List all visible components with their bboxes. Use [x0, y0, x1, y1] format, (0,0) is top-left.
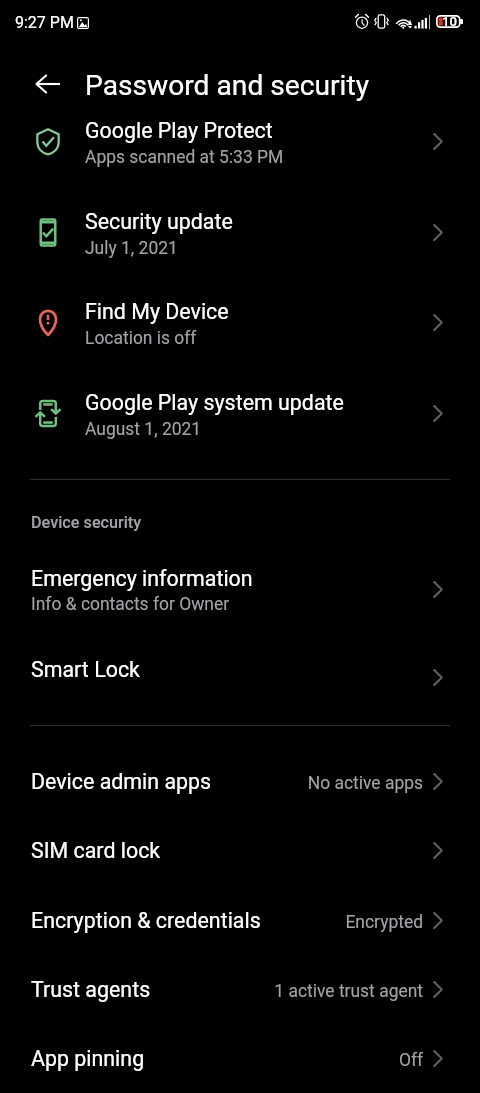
button[interactable]: SIM card lock: [0, 823, 480, 892]
button[interactable]: Back: [24, 60, 72, 108]
staticText: July 1, 2021: [85, 238, 178, 258]
button[interactable]: Emergency information: [0, 548, 480, 630]
staticText: Encryption & credentials: [31, 908, 261, 933]
button[interactable]: Security update: [0, 187, 480, 277]
button[interactable]: Google Play Protect: [0, 96, 480, 186]
staticText: Off: [163, 1050, 423, 1070]
button[interactable]: Trust agents: [0, 962, 480, 1031]
staticText: SIM card lock: [31, 838, 161, 863]
button[interactable]: Encryption & credentials: [0, 893, 480, 962]
button[interactable]: Google Play system update: [0, 368, 480, 458]
staticText: Password and security: [85, 69, 370, 102]
staticText: Smart Lock: [31, 657, 140, 682]
staticText: Info & contacts for Owner: [31, 594, 230, 614]
staticText: Find My Device: [85, 299, 229, 324]
staticText: Trust agents: [31, 977, 151, 1002]
staticText: Security update: [85, 209, 233, 234]
staticText: Device admin apps: [31, 769, 212, 794]
staticText: No active apps: [163, 773, 423, 793]
button[interactable]: Find My Device: [0, 277, 480, 367]
staticText: Location is off: [85, 328, 197, 348]
staticText: App pinning: [31, 1046, 145, 1071]
staticText: Device security: [31, 513, 142, 532]
staticText: Encrypted: [163, 912, 423, 932]
button[interactable]: Device admin apps: [0, 754, 480, 823]
staticText: Google Play system update: [85, 390, 344, 415]
button[interactable]: App pinning: [0, 1031, 480, 1093]
staticText: Apps scanned at 5:33 PM: [85, 147, 284, 167]
staticText: 9:27 PM: [15, 13, 74, 32]
staticText: Emergency information: [31, 566, 253, 591]
staticText: 10: [442, 14, 457, 29]
staticText: August 1, 2021: [85, 419, 202, 439]
staticText: Google Play Protect: [85, 118, 273, 143]
staticText: 1 active trust agent: [163, 981, 423, 1001]
button[interactable]: Smart Lock: [0, 645, 480, 707]
